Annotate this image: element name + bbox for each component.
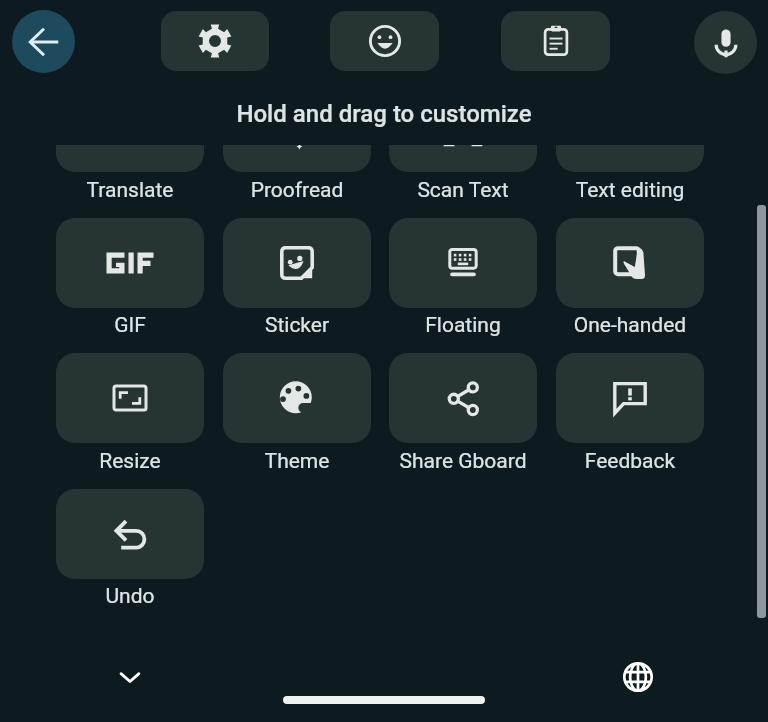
staticText: Proofread	[223, 178, 371, 203]
button[interactable]	[56, 353, 204, 443]
button[interactable]	[223, 145, 371, 172]
staticText: One-handed	[556, 313, 704, 338]
staticText: Translate	[56, 178, 204, 203]
staticText: Sticker	[223, 313, 371, 338]
button[interactable]: Hide keyboard	[106, 653, 154, 701]
button[interactable]: Clipboard	[501, 11, 610, 71]
button[interactable]	[56, 489, 204, 579]
button[interactable]: Voice input	[694, 11, 757, 74]
button[interactable]: Settings	[161, 11, 269, 71]
button[interactable]	[389, 218, 537, 308]
button[interactable]: Emoji	[330, 11, 439, 71]
button[interactable]	[556, 145, 704, 172]
staticText: Feedback	[556, 449, 704, 474]
button[interactable]	[56, 218, 204, 308]
button[interactable]: Change language	[614, 653, 662, 701]
button[interactable]	[223, 218, 371, 308]
button[interactable]	[556, 218, 704, 308]
staticText: GIF	[56, 313, 204, 338]
button[interactable]	[389, 353, 537, 443]
staticText: Share Gboard	[389, 449, 537, 474]
staticText: Text editing	[556, 178, 704, 203]
button[interactable]: Back	[12, 10, 75, 73]
button[interactable]	[389, 145, 537, 172]
staticText: Resize	[56, 449, 204, 474]
button[interactable]	[56, 145, 204, 172]
button[interactable]	[223, 353, 371, 443]
staticText: Hold and drag to customize	[0, 100, 768, 128]
staticText: Theme	[223, 449, 371, 474]
staticText: Scan Text	[389, 178, 537, 203]
staticText: Undo	[56, 584, 204, 609]
staticText: Floating	[389, 313, 537, 338]
button[interactable]	[556, 353, 704, 443]
